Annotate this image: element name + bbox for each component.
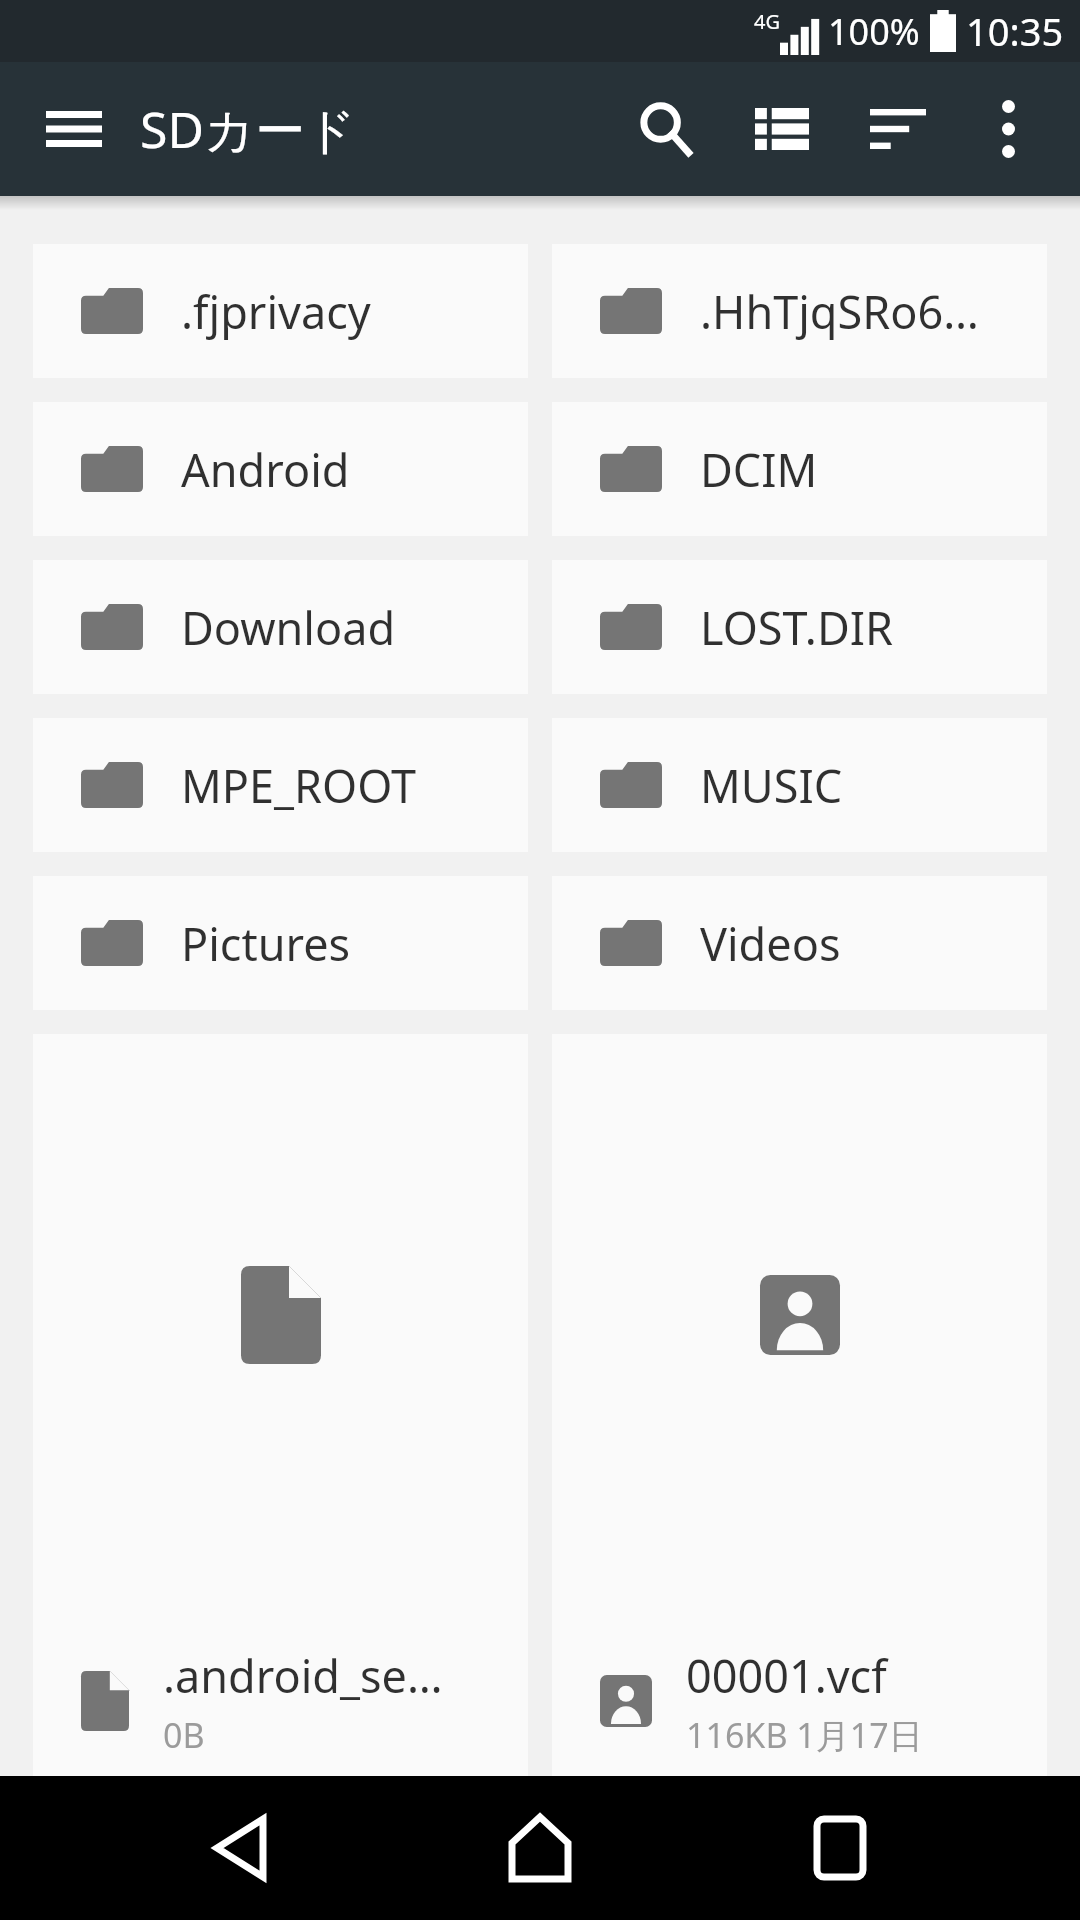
- staticText: 100%: [828, 7, 920, 56]
- button[interactable]: .HhTjqSRo6…: [552, 244, 1047, 378]
- button[interactable]: .android_se…: [33, 1034, 528, 1776]
- staticText: Pictures: [181, 913, 351, 974]
- button[interactable]: LOST.DIR: [552, 560, 1047, 694]
- button[interactable]: Videos: [552, 876, 1047, 1010]
- button[interactable]: Recent apps: [780, 1788, 900, 1908]
- staticText: 4G: [754, 8, 780, 35]
- staticText: MPE_ROOT: [181, 755, 416, 816]
- staticText: LOST.DIR: [700, 597, 894, 658]
- staticText: 10:35: [966, 5, 1064, 57]
- staticText: .android_se…: [163, 1645, 443, 1706]
- staticText: SDカード: [140, 95, 357, 163]
- button[interactable]: Back: [180, 1788, 300, 1908]
- button[interactable]: Android: [33, 402, 528, 536]
- staticText: 0B: [163, 1712, 205, 1758]
- staticText: Videos: [700, 913, 841, 974]
- button[interactable]: 00001.vcf: [552, 1034, 1047, 1776]
- button[interactable]: Home: [480, 1788, 600, 1908]
- button[interactable]: Download: [33, 560, 528, 694]
- staticText: MUSIC: [700, 755, 843, 816]
- button[interactable]: DCIM: [552, 402, 1047, 536]
- button[interactable]: Pictures: [33, 876, 528, 1010]
- button[interactable]: More options: [956, 77, 1060, 181]
- button[interactable]: Switch to list view: [724, 71, 840, 187]
- button[interactable]: MUSIC: [552, 718, 1047, 852]
- button[interactable]: MPE_ROOT: [33, 718, 528, 852]
- button[interactable]: .fjprivacy: [33, 244, 528, 378]
- staticText: Download: [181, 597, 396, 658]
- button[interactable]: Sort: [840, 71, 956, 187]
- button[interactable]: Navigation menu: [22, 77, 126, 181]
- staticText: .HhTjqSRo6…: [700, 281, 979, 342]
- staticText: 00001.vcf: [686, 1645, 887, 1706]
- staticText: Android: [181, 439, 350, 500]
- staticText: .fjprivacy: [181, 281, 371, 342]
- button[interactable]: Search: [608, 71, 724, 187]
- staticText: 116KB 1月17日: [686, 1712, 923, 1758]
- staticText: DCIM: [700, 439, 818, 500]
